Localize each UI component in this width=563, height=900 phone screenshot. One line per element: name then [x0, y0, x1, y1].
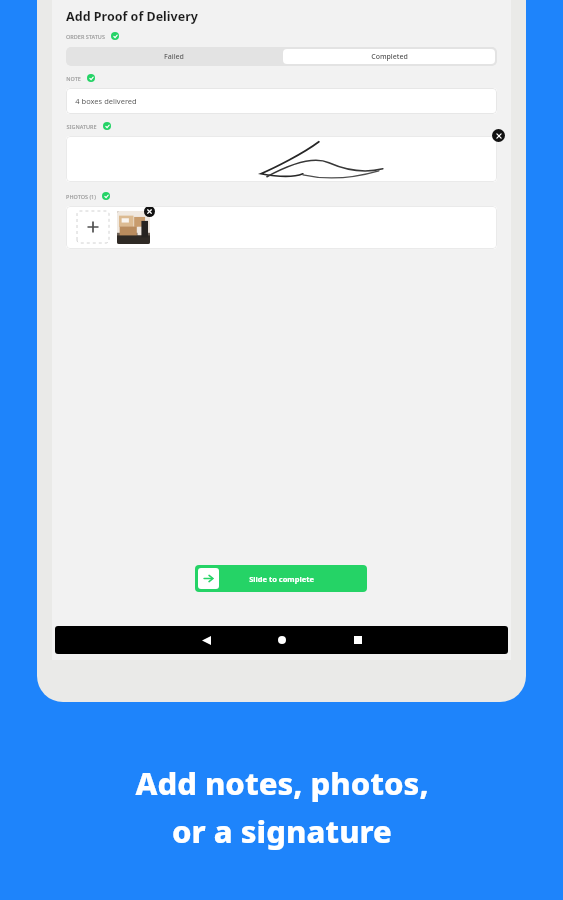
- button[interactable]: [66, 136, 497, 182]
- staticText: Slide to complete: [249, 574, 314, 584]
- button[interactable]: Failed: [66, 47, 281, 66]
- button[interactable]: Completed: [283, 49, 495, 64]
- staticText: 4 boxes delivered: [75, 96, 137, 106]
- button[interactable]: Remove photo: [144, 206, 155, 217]
- button[interactable]: Remove signature: [492, 129, 505, 142]
- button[interactable]: Add photo: [77, 211, 109, 243]
- staticText: ORDER STATUS: [66, 33, 105, 40]
- staticText: PHOTOS (1): [66, 193, 96, 200]
- button[interactable]: Recents: [320, 626, 396, 654]
- staticText: Add notes, photos,: [135, 762, 429, 804]
- button[interactable]: [117, 211, 150, 244]
- button[interactable]: 4 boxes delivered: [66, 88, 497, 114]
- staticText: Failed: [164, 52, 184, 62]
- staticText: or a signature: [172, 810, 392, 852]
- button[interactable]: Home: [244, 626, 320, 654]
- button[interactable]: Slide to complete: [195, 565, 367, 592]
- staticText: Completed: [371, 52, 408, 62]
- button[interactable]: Back: [168, 626, 244, 654]
- staticText: Add Proof of Delivery: [66, 8, 198, 25]
- staticText: NOTE: [66, 75, 81, 82]
- staticText: SIGNATURE: [66, 123, 97, 130]
